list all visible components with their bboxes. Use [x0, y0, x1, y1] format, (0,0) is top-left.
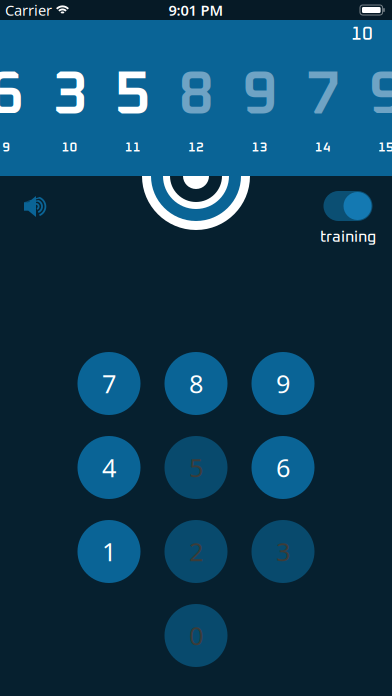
staticText: 8 [179, 65, 214, 126]
staticText: 9 [2, 141, 10, 154]
staticText: 9:01 PM [168, 0, 223, 20]
button[interactable]: 9 [251, 352, 314, 415]
staticText: 6 [276, 451, 290, 484]
button[interactable]: 5 [164, 436, 227, 499]
staticText: 11 [125, 141, 141, 154]
staticText: 3 [276, 535, 290, 568]
staticText: 7 [305, 65, 340, 126]
staticText: 6 [0, 65, 24, 126]
staticText: 8 [189, 367, 203, 400]
staticText: 13 [251, 141, 267, 154]
staticText: 12 [188, 141, 204, 154]
button[interactable]: 0 [164, 604, 227, 667]
staticText: 4 [102, 451, 116, 484]
staticText: 9 [368, 65, 392, 126]
staticText: 7 [102, 367, 116, 400]
button[interactable]: 6 [251, 436, 314, 499]
button[interactable]: training [320, 191, 376, 245]
staticText: 9 [276, 367, 290, 400]
staticText: 9 [242, 65, 277, 126]
button[interactable]: 3 [251, 520, 314, 583]
button[interactable]: 8 [164, 352, 227, 415]
staticText: 1 [102, 535, 116, 568]
staticText: 3 [52, 65, 87, 126]
button[interactable]: 7 [77, 352, 140, 415]
staticText: 10 [61, 141, 77, 154]
button[interactable]: 2 [164, 520, 227, 583]
staticText: 0 [189, 619, 203, 652]
button[interactable]: 1 [77, 520, 140, 583]
button[interactable]: Sound [24, 196, 48, 217]
staticText: 14 [315, 141, 331, 154]
staticText: 2 [189, 535, 203, 568]
staticText: Carrier [5, 0, 52, 20]
staticText: training [320, 229, 376, 245]
button[interactable]: 4 [77, 436, 140, 499]
staticText: 5 [189, 451, 203, 484]
staticText: 5 [115, 65, 150, 126]
staticText: 10 [351, 25, 373, 44]
staticText: 15 [378, 141, 392, 154]
